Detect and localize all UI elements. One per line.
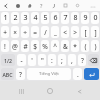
button[interactable]: : bbox=[48, 54, 56, 66]
staticText: ^ bbox=[53, 42, 57, 51]
button[interactable]: Back bbox=[72, 84, 86, 98]
button[interactable]: ? bbox=[16, 68, 25, 80]
staticText: ÷ bbox=[23, 28, 27, 37]
button[interactable]: 4 bbox=[31, 12, 39, 24]
button[interactable]: % bbox=[41, 40, 49, 52]
button[interactable]: Keyboard mode bbox=[61, 1, 70, 10]
staticText: 5 bbox=[43, 13, 48, 23]
button[interactable]: 6 bbox=[51, 12, 59, 24]
button[interactable]: ; bbox=[58, 54, 66, 66]
button[interactable]: × bbox=[11, 26, 19, 38]
button[interactable]: * bbox=[71, 40, 79, 52]
staticText: # bbox=[28, 2, 32, 9]
button[interactable]: , bbox=[68, 54, 76, 66]
button[interactable]: 7 bbox=[61, 12, 69, 24]
staticText: $ bbox=[33, 42, 37, 51]
button[interactable]: . bbox=[73, 68, 82, 80]
button[interactable]: # bbox=[21, 40, 29, 52]
button[interactable]: Recents bbox=[14, 84, 28, 98]
staticText: ? bbox=[81, 56, 84, 65]
staticText: & bbox=[63, 42, 68, 51]
staticText: × bbox=[13, 28, 17, 37]
staticText: ? bbox=[40, 2, 43, 9]
button[interactable]: 0 bbox=[91, 12, 99, 24]
staticText: @ bbox=[12, 42, 18, 51]
staticText: . bbox=[77, 70, 79, 79]
staticText: 8 bbox=[73, 13, 78, 23]
button[interactable]: @ bbox=[11, 40, 19, 52]
button[interactable]: More options bbox=[88, 1, 98, 11]
button[interactable]: > bbox=[71, 26, 79, 38]
staticText: = bbox=[33, 28, 37, 37]
button[interactable]: ÷ bbox=[21, 26, 29, 38]
button[interactable]: Settings bbox=[73, 1, 82, 10]
staticText: ? bbox=[19, 70, 22, 79]
button[interactable]: ^ bbox=[51, 40, 59, 52]
staticText: % bbox=[42, 42, 48, 51]
button[interactable]: 8 bbox=[71, 12, 79, 24]
button[interactable]: + bbox=[1, 26, 9, 38]
staticText: 3 bbox=[23, 13, 28, 23]
staticText: 9 bbox=[83, 13, 88, 23]
staticText: 0 bbox=[93, 13, 98, 23]
staticText: 2 bbox=[13, 13, 18, 23]
button[interactable]: 3 bbox=[21, 12, 29, 24]
button[interactable]: GIF bbox=[25, 1, 34, 10]
button[interactable]: $ bbox=[31, 40, 39, 52]
staticText: ! bbox=[4, 42, 6, 51]
button[interactable]: " bbox=[38, 54, 46, 66]
staticText: 6 bbox=[53, 13, 58, 23]
button[interactable]: ( bbox=[81, 40, 89, 52]
staticText: : bbox=[51, 56, 53, 65]
button[interactable]: < bbox=[61, 26, 69, 38]
button[interactable]: Enter bbox=[84, 68, 99, 80]
staticText: " bbox=[41, 56, 44, 65]
staticText: ( bbox=[84, 42, 87, 51]
staticText: ] bbox=[94, 28, 97, 37]
staticText: ' bbox=[31, 56, 33, 65]
button[interactable]: Search bbox=[37, 1, 46, 10]
button[interactable]: ] bbox=[91, 26, 99, 38]
button[interactable]: Home bbox=[43, 84, 57, 98]
button[interactable]: 1/2 bbox=[1, 54, 15, 66]
staticText: + bbox=[3, 28, 7, 37]
staticText: ) bbox=[94, 42, 97, 51]
staticText: [ bbox=[84, 28, 87, 37]
button[interactable]: Stickers bbox=[13, 1, 22, 10]
button[interactable]: ! bbox=[1, 40, 9, 52]
staticText: # bbox=[23, 42, 28, 51]
staticText: < bbox=[63, 28, 67, 37]
button[interactable]: ? bbox=[78, 54, 86, 66]
button[interactable]: Backspace bbox=[88, 54, 99, 66]
staticText: _ bbox=[54, 28, 57, 37]
staticText: 4 bbox=[33, 13, 38, 23]
button[interactable]: = bbox=[31, 26, 39, 38]
button[interactable]: ) bbox=[91, 40, 99, 52]
staticText: Tiếng Việt bbox=[39, 71, 59, 77]
button[interactable]: - bbox=[17, 54, 26, 66]
staticText: 1/2 bbox=[4, 57, 12, 64]
staticText: / bbox=[44, 28, 47, 37]
staticText: > bbox=[73, 28, 77, 37]
button[interactable]: / bbox=[41, 26, 49, 38]
button[interactable]: ' bbox=[28, 54, 36, 66]
button[interactable]: ABC bbox=[1, 68, 14, 80]
button[interactable]: [ bbox=[81, 26, 89, 38]
staticText: 7 bbox=[63, 13, 68, 23]
button[interactable]: 2 bbox=[11, 12, 19, 24]
button[interactable]: & bbox=[61, 40, 69, 52]
button[interactable]: Tiếng Việt bbox=[27, 68, 71, 80]
button[interactable]: 1 bbox=[1, 12, 9, 24]
staticText: - bbox=[20, 56, 23, 65]
staticText: , bbox=[71, 56, 73, 65]
button[interactable]: 9 bbox=[81, 12, 89, 24]
button[interactable]: _ bbox=[51, 26, 59, 38]
staticText: * bbox=[73, 42, 77, 51]
button[interactable]: Expand toolbar bbox=[1, 1, 10, 10]
button[interactable]: 5 bbox=[41, 12, 49, 24]
staticText: ; bbox=[61, 56, 63, 65]
button[interactable]: Translate bbox=[49, 1, 58, 10]
staticText: ABC bbox=[2, 71, 13, 78]
staticText: 1 bbox=[3, 13, 8, 23]
